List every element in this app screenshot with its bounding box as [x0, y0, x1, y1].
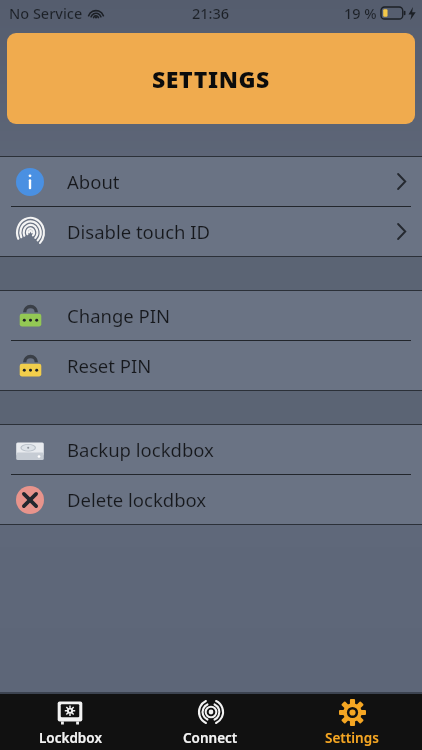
staticText: 21:36	[192, 3, 230, 23]
button[interactable]: Lockdbox	[0, 694, 140, 750]
button[interactable]: About	[0, 157, 422, 206]
button[interactable]: Settings	[281, 694, 422, 750]
button[interactable]: Change PIN	[0, 291, 422, 340]
staticText: SETTINGS	[152, 63, 270, 94]
staticText: Reset PIN	[67, 353, 152, 378]
button[interactable]: SETTINGS	[7, 33, 415, 124]
staticText: 19 %	[344, 3, 377, 23]
staticText: About	[67, 169, 120, 194]
staticText: Connect	[183, 729, 238, 747]
staticText: Disable touch ID	[67, 219, 211, 244]
button[interactable]: Connect	[140, 694, 281, 750]
staticText: No Service	[9, 3, 83, 23]
staticText: Settings	[325, 729, 379, 747]
button[interactable]: Delete lockdbox	[0, 475, 422, 524]
staticText: Backup lockdbox	[67, 437, 214, 462]
staticText: Lockdbox	[39, 729, 102, 747]
staticText: Change PIN	[67, 303, 171, 328]
button[interactable]: Disable touch ID	[0, 207, 422, 256]
staticText: Delete lockdbox	[67, 487, 207, 512]
button[interactable]: Reset PIN	[0, 341, 422, 390]
button[interactable]: Backup lockdbox	[0, 425, 422, 474]
